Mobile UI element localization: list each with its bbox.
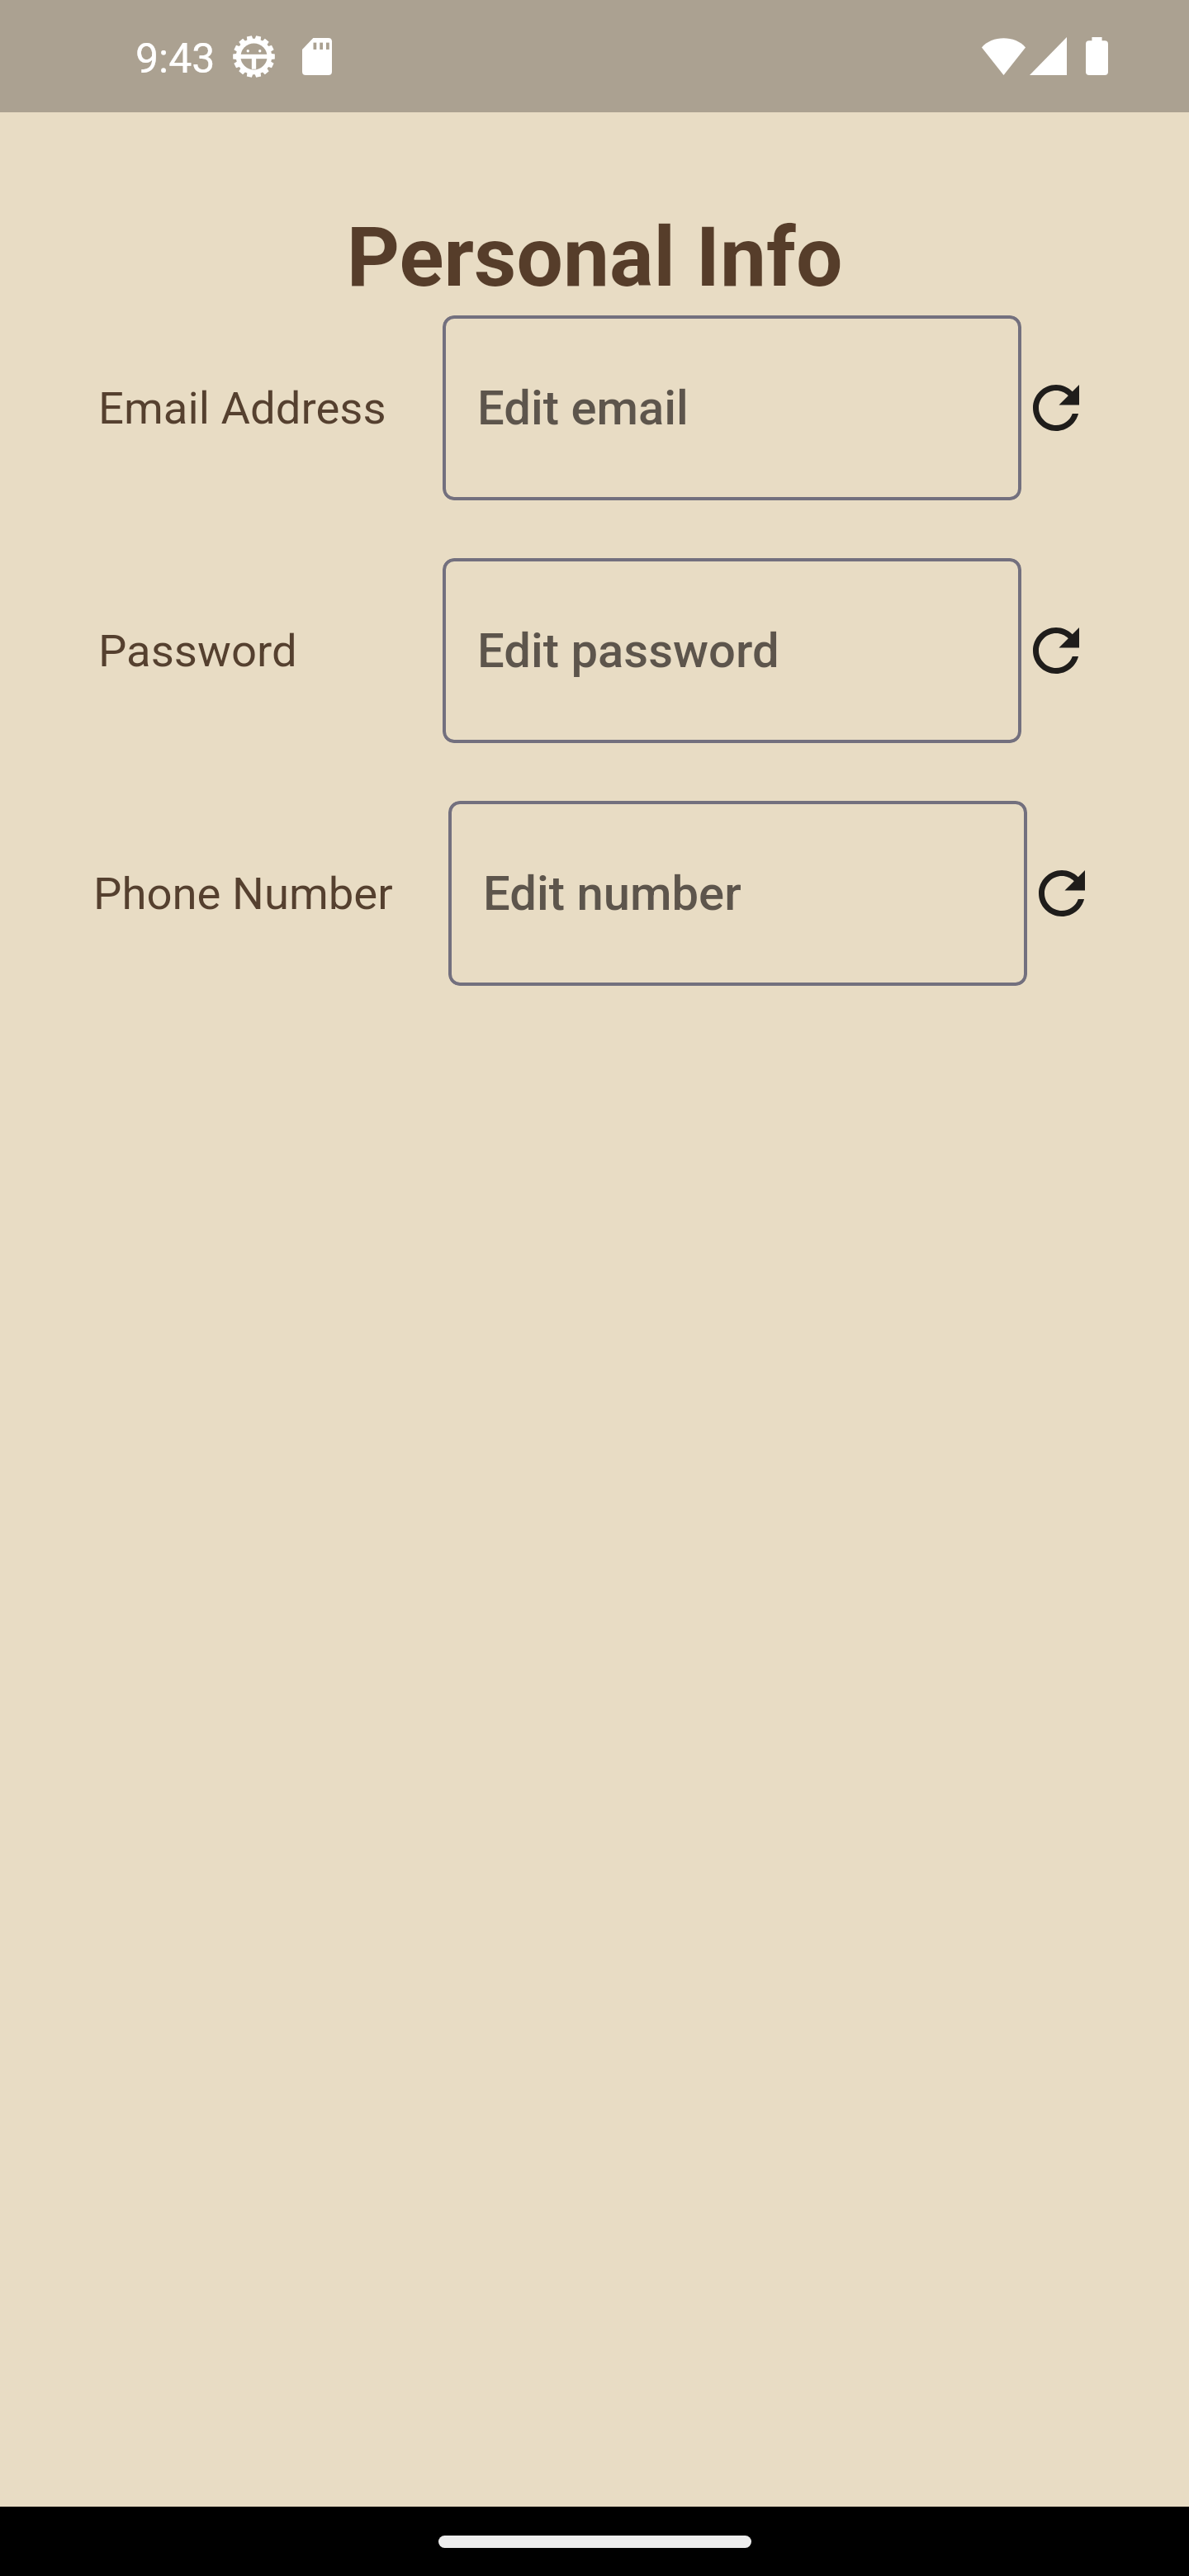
staticText: Personal Info xyxy=(0,209,1189,305)
staticText: Edit number xyxy=(483,865,741,921)
button[interactable]: Refresh Phone Number xyxy=(1027,859,1097,928)
staticText: Email Address xyxy=(98,381,387,434)
staticText: Edit email xyxy=(477,380,689,436)
button[interactable]: Edit password xyxy=(443,558,1021,743)
button[interactable]: Refresh Password xyxy=(1021,616,1091,685)
staticText: 9:43 xyxy=(135,35,216,83)
button[interactable]: Edit email xyxy=(443,315,1021,500)
staticText: Edit password xyxy=(477,623,779,679)
button[interactable]: Edit number xyxy=(448,801,1027,986)
staticText: Phone Number xyxy=(93,867,393,920)
staticText: Password xyxy=(98,624,387,677)
button[interactable]: Refresh Email Address xyxy=(1021,373,1091,443)
